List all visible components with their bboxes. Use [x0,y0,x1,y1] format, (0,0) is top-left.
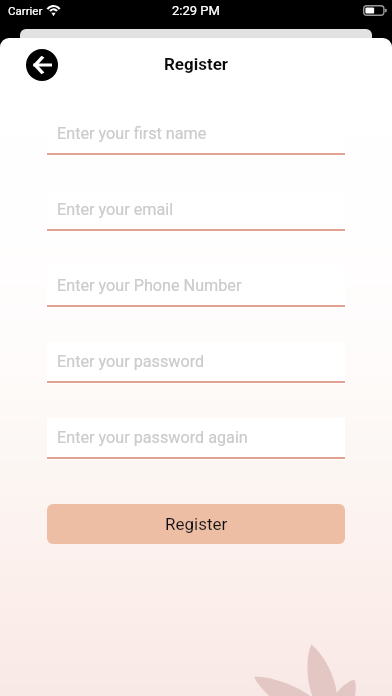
staticText: Enter your first name [57,124,207,143]
button[interactable]: Enter your first name [47,114,345,156]
staticText: Enter your password [57,352,205,371]
button[interactable]: Enter your email [47,190,345,232]
staticText: 2:29 PM [172,3,220,18]
button[interactable]: Enter your password again [47,418,345,460]
staticText: Enter your Phone Number [57,276,242,295]
staticText: Carrier [8,4,43,17]
staticText: Register [165,514,228,534]
button[interactable]: Register [47,504,345,544]
staticText: Register [0,54,392,74]
staticText: Enter your email [57,200,174,219]
button[interactable]: Enter your Phone Number [47,266,345,308]
button[interactable]: Enter your password [47,342,345,384]
staticText: Enter your password again [57,428,248,447]
button[interactable]: Back [26,49,58,81]
